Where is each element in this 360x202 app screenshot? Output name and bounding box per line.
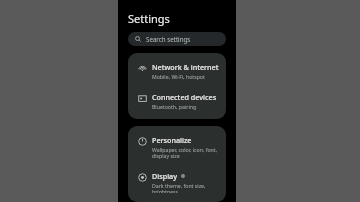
staticText: Connected devices [152, 92, 217, 102]
staticText: Search settings [146, 35, 191, 43]
button[interactable]: Search settings [128, 32, 226, 46]
button[interactable]: Personalize [128, 129, 226, 165]
staticText: Display [152, 171, 177, 181]
staticText: Wallpaper, color, icon, font, display si… [152, 146, 220, 159]
staticText: Network & internet [152, 62, 219, 72]
button[interactable]: Network & internet [128, 56, 226, 86]
staticText: Settings [128, 11, 170, 26]
staticText: Dark theme, font size, brightness [152, 182, 220, 193]
button[interactable]: Connected devices [128, 86, 226, 116]
staticText: Bluetooth, pairing [152, 103, 197, 110]
button[interactable]: Display [128, 165, 226, 199]
staticText: Mobile, Wi-Fi, hotspot [152, 73, 205, 80]
staticText: Personalize [152, 135, 192, 145]
